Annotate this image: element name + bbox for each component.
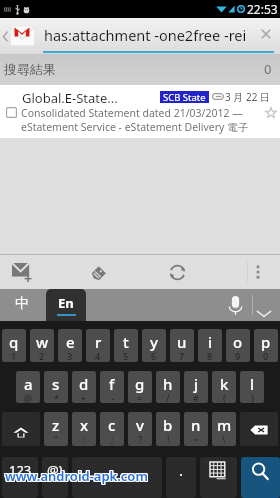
staticText: 3 bbox=[67, 350, 73, 362]
staticText: @) bbox=[47, 461, 63, 479]
button[interactable]: Space bbox=[72, 457, 162, 498]
button[interactable]: Shift bbox=[2, 412, 40, 446]
staticText: 9 bbox=[235, 350, 241, 362]
staticText: ? bbox=[138, 433, 143, 445]
staticText: m bbox=[217, 415, 232, 435]
staticText: ) bbox=[251, 392, 254, 403]
button[interactable]: l bbox=[240, 371, 264, 403]
button[interactable]: 中 bbox=[0, 289, 43, 321]
staticText: l bbox=[250, 374, 255, 394]
button[interactable]: k bbox=[212, 371, 236, 403]
staticText: www.android-apk.com bbox=[4, 466, 147, 484]
button[interactable]: Up bbox=[0, 18, 44, 54]
button[interactable]: d bbox=[72, 371, 96, 403]
staticText: ! bbox=[167, 433, 170, 445]
button[interactable]: Labels bbox=[62, 255, 138, 289]
staticText: @ bbox=[24, 392, 33, 403]
button[interactable]: More options bbox=[243, 255, 273, 289]
staticText: b bbox=[163, 415, 173, 435]
button[interactable]: j bbox=[184, 371, 208, 403]
staticText: www.android-apk.com bbox=[4, 468, 147, 486]
staticText: 搜尋結果 bbox=[4, 61, 56, 77]
staticText: \ bbox=[222, 433, 226, 445]
staticText: d bbox=[79, 374, 89, 394]
staticText: www.android-apk.com bbox=[5, 466, 148, 484]
button[interactable]: Global.E-State... bbox=[0, 85, 280, 138]
staticText: www.android-apk.com bbox=[4, 467, 147, 485]
staticText: u bbox=[177, 332, 187, 352]
button[interactable]: x bbox=[72, 412, 96, 446]
staticText: + bbox=[81, 392, 87, 403]
staticText: h bbox=[163, 374, 173, 394]
button[interactable]: s bbox=[44, 371, 68, 403]
staticText: f bbox=[109, 374, 115, 394]
button[interactable]: @) bbox=[42, 457, 68, 498]
button[interactable]: h bbox=[156, 371, 180, 403]
staticText: ~ bbox=[193, 433, 199, 445]
staticText: j bbox=[194, 374, 199, 394]
staticText: # bbox=[193, 392, 199, 403]
button[interactable]: i bbox=[198, 329, 222, 362]
button[interactable]: 123 bbox=[2, 457, 38, 498]
staticText: 22:53 bbox=[247, 1, 278, 17]
button[interactable]: p bbox=[254, 329, 278, 362]
button[interactable]: Hide keyboard bbox=[252, 289, 280, 321]
staticText: w bbox=[36, 332, 49, 352]
button[interactable]: f bbox=[100, 371, 124, 403]
staticText: t bbox=[123, 332, 129, 352]
button[interactable]: r bbox=[86, 329, 110, 362]
staticText: www.android-apk.com bbox=[5, 468, 148, 486]
staticText: e bbox=[66, 332, 75, 352]
button[interactable]: Backspace bbox=[240, 412, 278, 446]
staticText: 1 bbox=[11, 350, 17, 362]
staticText: 0 bbox=[264, 60, 272, 78]
button[interactable]: n bbox=[184, 412, 208, 446]
staticText: Consolidated Statement dated 21/03/2012 … bbox=[21, 106, 265, 134]
button[interactable]: Voice input bbox=[221, 289, 250, 321]
button[interactable]: En bbox=[46, 289, 86, 321]
button[interactable]: m bbox=[212, 412, 236, 446]
staticText: has:attachment -one2free -rei bbox=[44, 25, 247, 45]
staticText: r bbox=[95, 332, 102, 352]
staticText: z bbox=[52, 415, 60, 435]
button[interactable]: Switch keyboard bbox=[200, 457, 237, 498]
staticText: x bbox=[80, 415, 89, 435]
staticText: g bbox=[135, 374, 145, 394]
staticText: - bbox=[111, 392, 114, 403]
button[interactable]: Search bbox=[241, 457, 280, 498]
button[interactable]: g bbox=[128, 371, 152, 403]
button[interactable]: o bbox=[226, 329, 250, 362]
staticText: 中 bbox=[15, 295, 29, 313]
staticText: q bbox=[9, 332, 19, 352]
staticText: Global.E-State... bbox=[22, 89, 118, 104]
button[interactable]: w bbox=[30, 329, 54, 362]
button[interactable]: Clear search bbox=[252, 18, 280, 54]
button[interactable]: t bbox=[114, 329, 138, 362]
button[interactable]: Refresh bbox=[139, 255, 215, 289]
staticText: ; bbox=[111, 433, 114, 445]
staticText: n bbox=[191, 415, 201, 435]
button[interactable]: a bbox=[16, 371, 40, 403]
button[interactable]: b bbox=[156, 412, 180, 446]
button[interactable]: Compose bbox=[0, 255, 44, 289]
staticText: SCB State bbox=[163, 91, 206, 103]
button[interactable]: y bbox=[142, 329, 166, 362]
staticText: www.android-apk.com bbox=[6, 467, 149, 485]
button[interactable]: c bbox=[100, 412, 124, 446]
button[interactable]: z bbox=[44, 412, 68, 446]
staticText: 123 bbox=[9, 461, 32, 479]
button[interactable]: q bbox=[2, 329, 26, 362]
button[interactable]: . bbox=[166, 457, 196, 498]
button[interactable]: v bbox=[128, 412, 152, 446]
staticText: www.android-apk.com bbox=[5, 467, 148, 485]
staticText: 8 bbox=[207, 350, 213, 362]
staticText: ( bbox=[223, 392, 226, 403]
staticText: 7 bbox=[179, 350, 185, 362]
staticText: v bbox=[136, 415, 144, 435]
button[interactable]: u bbox=[170, 329, 194, 362]
staticText: k bbox=[220, 374, 229, 394]
staticText: 2 bbox=[39, 350, 45, 362]
staticText: " bbox=[54, 433, 58, 445]
staticText: c bbox=[108, 415, 116, 435]
button[interactable]: e bbox=[58, 329, 82, 362]
